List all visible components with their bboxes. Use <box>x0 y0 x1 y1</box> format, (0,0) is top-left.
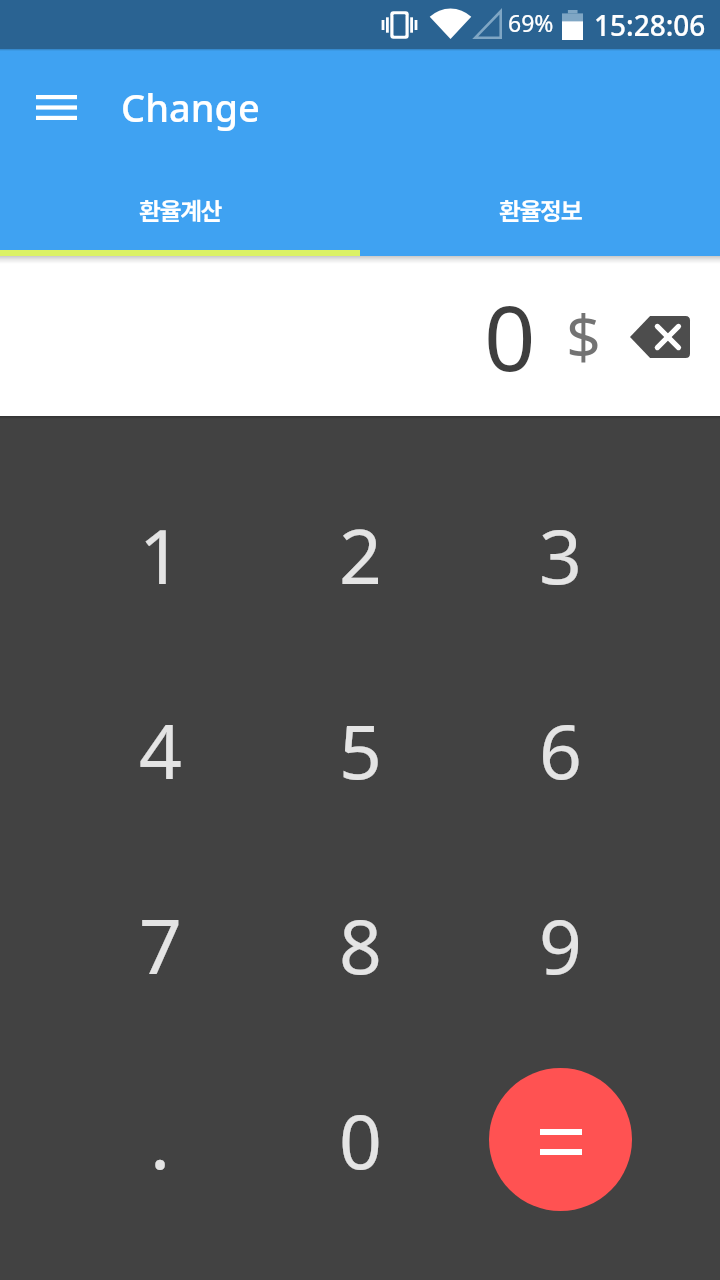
button[interactable]: Open navigation drawer <box>20 71 92 143</box>
staticText: 0 <box>484 275 536 398</box>
staticText: 15:28:06 <box>594 6 706 44</box>
button[interactable]: 4 <box>60 652 260 847</box>
button[interactable]: 3 <box>460 457 660 652</box>
staticText: 8 <box>339 894 382 996</box>
staticText: . <box>150 1089 171 1191</box>
staticText: 9 <box>539 894 582 996</box>
staticText: 7 <box>139 894 182 996</box>
staticText: 69% <box>508 7 554 38</box>
staticText: 2 <box>339 504 382 606</box>
button[interactable]: 1 <box>60 457 260 652</box>
staticText: 5 <box>339 699 382 801</box>
staticText: 환율정보 <box>499 192 581 227</box>
button[interactable]: . <box>60 1042 260 1237</box>
button[interactable]: 9 <box>460 847 660 1042</box>
button[interactable]: 환율계산 <box>0 164 360 256</box>
button[interactable]: 7 <box>60 847 260 1042</box>
button[interactable]: Equals <box>489 1068 632 1211</box>
staticText: 환율계산 <box>139 192 221 227</box>
staticText: 1 <box>139 504 182 606</box>
staticText: Change <box>121 81 260 133</box>
button[interactable]: Backspace <box>630 316 690 358</box>
button[interactable]: 6 <box>460 652 660 847</box>
staticText: $ <box>566 294 601 377</box>
staticText: 0 <box>339 1089 382 1191</box>
button[interactable]: 환율정보 <box>360 164 720 256</box>
staticText: 6 <box>539 699 582 801</box>
button[interactable]: 2 <box>260 457 460 652</box>
button[interactable]: 5 <box>260 652 460 847</box>
staticText: 3 <box>539 504 582 606</box>
staticText: 4 <box>139 699 182 801</box>
button[interactable]: 0 <box>260 1042 460 1237</box>
button[interactable]: 8 <box>260 847 460 1042</box>
